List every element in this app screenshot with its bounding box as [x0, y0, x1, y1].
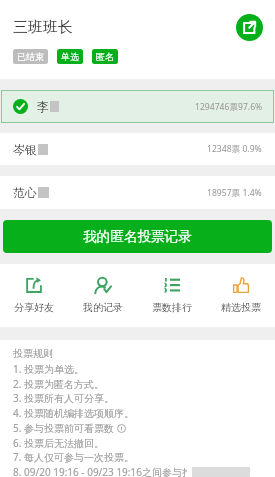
- button[interactable]: 分享: [236, 14, 263, 41]
- button[interactable]: 精选投票: [206, 264, 275, 327]
- staticText: 12348票 0.9%: [207, 143, 262, 155]
- staticText: 1294746票97.6%: [195, 101, 263, 113]
- staticText: 李: [37, 99, 49, 114]
- staticText: 18957票 1.4%: [207, 187, 262, 199]
- staticText: 1. 投票为单选。: [13, 362, 84, 376]
- staticText: 我的记录: [83, 301, 123, 314]
- staticText: 票数排行: [152, 301, 192, 314]
- staticText: 8. 09/20 19:16 - 09/23 19:16之间参与扌: [13, 465, 192, 477]
- staticText: 精选投票: [221, 301, 261, 314]
- staticText: 岑银: [13, 142, 37, 157]
- button[interactable]: 分享好友: [0, 264, 68, 327]
- staticText: 2. 投票为匿名方式。: [13, 377, 104, 391]
- button[interactable]: 范心: [0, 176, 275, 209]
- staticText: 我的匿名投票记录: [83, 228, 192, 245]
- button[interactable]: 李: [1, 90, 274, 123]
- staticText: 投票规则: [13, 347, 53, 360]
- button[interactable]: 岑银: [0, 133, 275, 165]
- staticText: 5. 参与投票前可看票数: [13, 421, 114, 435]
- button[interactable]: 票数排行: [137, 264, 206, 327]
- staticText: 7. 每人仅可参与一次投票。: [13, 450, 134, 464]
- staticText: 三班班长: [13, 18, 73, 37]
- staticText: 单选: [61, 51, 79, 62]
- button[interactable]: 我的记录: [68, 264, 137, 327]
- staticText: 匿名: [96, 51, 114, 62]
- staticText: 已结束: [17, 51, 44, 62]
- button[interactable]: 我的匿名投票记录: [3, 220, 272, 253]
- staticText: 范心: [13, 185, 37, 200]
- staticText: 3. 投票所有人可分享。: [13, 391, 114, 405]
- staticText: 6. 投票后无法撤回。: [13, 436, 104, 450]
- staticText: 4. 投票随机编排选项顺序。: [13, 406, 134, 420]
- staticText: 分享好友: [14, 301, 54, 314]
